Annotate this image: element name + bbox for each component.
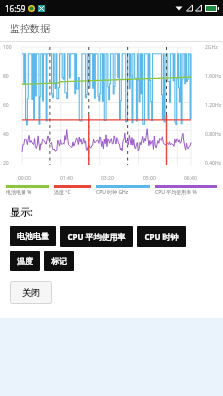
staticText: 60 [3, 102, 9, 109]
staticText: 06:40 [184, 175, 197, 182]
staticText: CPU 平均使用率 % [155, 189, 197, 196]
staticText: 00:00 [18, 175, 31, 182]
staticText: 01:40 [60, 175, 73, 182]
staticText: 温度 °C [54, 189, 71, 196]
staticText: 电池电量 [17, 231, 49, 241]
staticText: 03:20 [101, 175, 114, 182]
staticText: CPU 时钟 GHz [96, 189, 129, 196]
staticText: 显示: [10, 205, 33, 219]
staticText: 100 [3, 44, 12, 51]
staticText: 关闭 [22, 287, 40, 298]
button[interactable]: 温度 [10, 251, 40, 271]
button[interactable]: CPU 时钟 [137, 226, 186, 247]
staticText: 监控数据 [10, 22, 50, 35]
button[interactable]: 关闭 [10, 281, 52, 304]
staticText: 2GHz [205, 44, 218, 51]
button[interactable]: CPU 平均使用率 [60, 226, 133, 247]
staticText: 80 [3, 73, 9, 80]
staticText: 1.60Hz [205, 73, 221, 80]
staticText: 40 [3, 131, 9, 138]
button[interactable]: 电池电量 [10, 226, 56, 246]
button[interactable]: 标记 [44, 251, 74, 271]
staticText: 电池电量 % [6, 189, 32, 196]
staticText: 20 [3, 160, 9, 167]
staticText: CPU 平均使用率 [67, 231, 126, 242]
staticText: 1.20Hz [205, 102, 221, 109]
staticText: CPU 时钟 [144, 231, 179, 242]
staticText: 0.80Hz [205, 131, 221, 138]
staticText: 05:00 [143, 175, 156, 182]
staticText: 16:59 [5, 3, 26, 14]
staticText: 0.40Hz [205, 160, 221, 167]
staticText: 温度 [17, 256, 33, 266]
staticText: 标记 [51, 256, 67, 266]
